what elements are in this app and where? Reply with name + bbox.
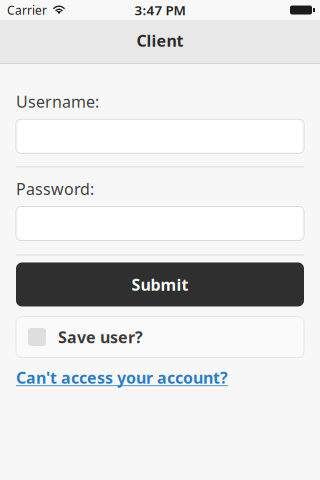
button[interactable]: Submit [16,262,304,306]
staticText: Submit [131,274,188,295]
button[interactable]: Can't access your account? [16,368,304,386]
staticText: Username: [16,91,99,112]
staticText: 3:47 PM [134,1,185,19]
staticText: Password: [16,178,94,199]
staticText: Carrier [7,2,47,18]
button[interactable]: Password [16,206,304,240]
staticText: Can't access your account? [16,367,228,388]
button[interactable]: Username [16,119,304,153]
button[interactable]: Save user? [16,316,304,357]
staticText: Client [136,30,183,51]
staticText: Save user? [58,326,143,348]
